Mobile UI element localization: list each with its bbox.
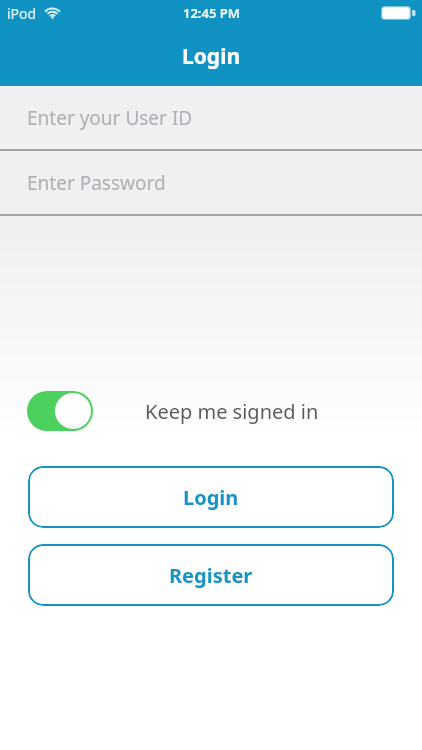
button[interactable]: Register: [28, 544, 394, 606]
staticText: Enter Password: [27, 170, 166, 196]
staticText: Register: [169, 562, 253, 589]
button[interactable]: Enter Password: [0, 151, 422, 214]
staticText: Keep me signed in: [145, 398, 319, 425]
button[interactable]: Login: [28, 466, 394, 528]
staticText: Enter your User ID: [27, 105, 193, 131]
staticText: Login: [183, 484, 239, 511]
button[interactable]: [27, 391, 93, 431]
staticText: iPod: [7, 4, 37, 23]
button[interactable]: Enter your User ID: [0, 86, 422, 149]
staticText: 12:45 PM: [183, 4, 240, 22]
staticText: Login: [182, 42, 241, 71]
